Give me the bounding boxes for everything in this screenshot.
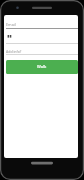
- button[interactable]: Add info?: [4, 46, 78, 54]
- button[interactable]: Email: [4, 17, 78, 29]
- staticText: Email: [6, 22, 16, 27]
- staticText: Walk: [37, 64, 47, 69]
- button[interactable]: [4, 32, 78, 43]
- button[interactable]: Walk: [6, 60, 78, 74]
- staticText: Add info?: [6, 49, 22, 54]
